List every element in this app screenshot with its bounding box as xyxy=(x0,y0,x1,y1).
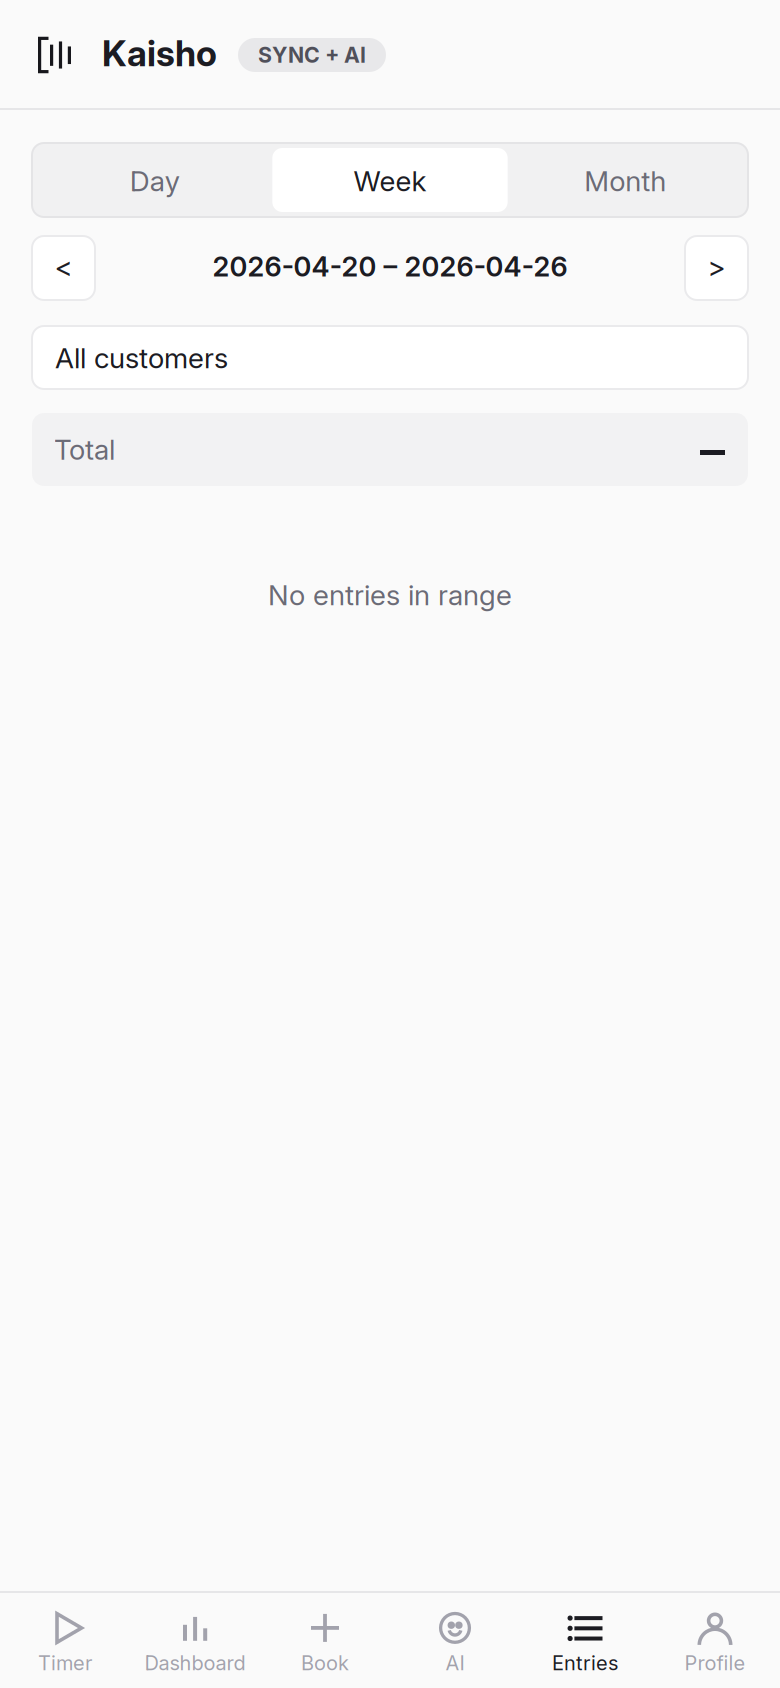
staticText: SYNC + AI xyxy=(258,42,366,68)
staticText: Dashboard xyxy=(144,1651,245,1675)
button[interactable]: Day xyxy=(37,148,272,212)
staticText: Day xyxy=(130,164,180,198)
staticText: < xyxy=(54,250,72,283)
staticText: Total xyxy=(54,433,115,466)
staticText: Timer xyxy=(38,1651,92,1675)
staticText: All customers xyxy=(55,341,228,375)
button[interactable]: Previous period xyxy=(32,236,95,300)
button[interactable]: AI xyxy=(390,1593,520,1686)
staticText: Profile xyxy=(684,1651,745,1675)
staticText: No entries in range xyxy=(268,578,512,612)
staticText: 2026-04-20 – 2026-04-26 xyxy=(212,250,567,283)
button[interactable]: Month xyxy=(508,148,743,212)
staticText: Book xyxy=(301,1651,349,1675)
staticText: > xyxy=(707,250,725,283)
button[interactable]: Dashboard xyxy=(130,1593,260,1686)
button[interactable]: Book xyxy=(260,1593,390,1686)
button[interactable]: Profile xyxy=(650,1593,780,1686)
button[interactable]: Timer xyxy=(0,1593,130,1686)
staticText: Week xyxy=(353,164,426,198)
button[interactable]: Week xyxy=(272,148,508,212)
staticText: Kaisho xyxy=(102,32,217,75)
button[interactable]: Entries xyxy=(520,1593,650,1686)
staticText: AI xyxy=(445,1651,464,1675)
staticText: Month xyxy=(584,164,666,198)
button[interactable]: Next period xyxy=(685,236,748,300)
staticText: Entries xyxy=(552,1651,618,1675)
button[interactable]: All customers xyxy=(32,326,748,389)
